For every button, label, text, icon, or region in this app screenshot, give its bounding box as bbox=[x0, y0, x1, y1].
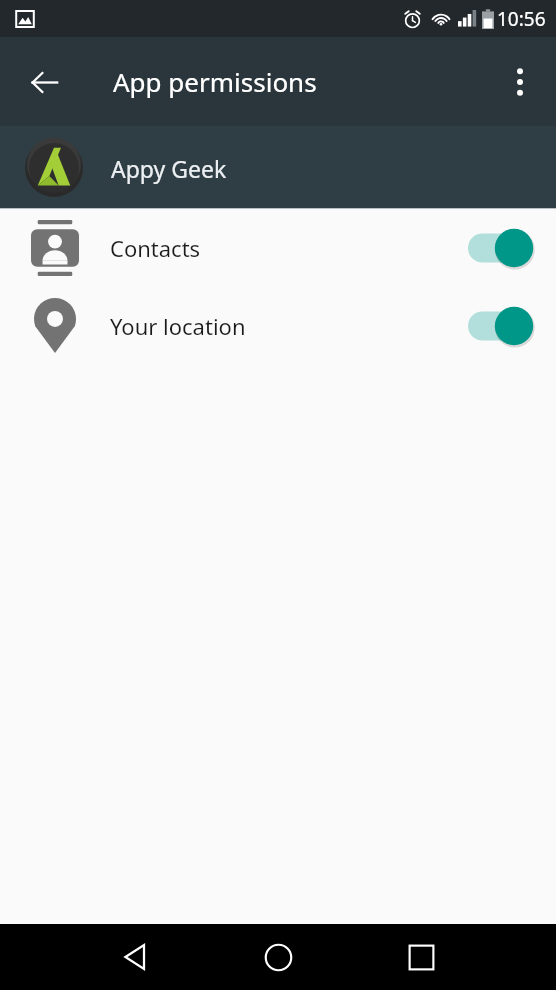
button[interactable]: Your location bbox=[0, 287, 556, 365]
staticText: 10:56 bbox=[497, 6, 546, 32]
staticText: Your location bbox=[110, 311, 246, 341]
button[interactable]: Back bbox=[14, 52, 74, 112]
button[interactable]: Back bbox=[104, 926, 166, 988]
button[interactable]: Recent apps bbox=[390, 926, 452, 988]
staticText: Appy Geek bbox=[111, 153, 227, 184]
button[interactable]: Contacts bbox=[0, 209, 556, 287]
button[interactable]: Contacts permission toggle bbox=[464, 223, 538, 273]
button[interactable]: More options bbox=[492, 54, 548, 110]
button[interactable]: Home bbox=[247, 926, 309, 988]
staticText: Contacts bbox=[110, 233, 201, 263]
button[interactable]: Appy Geek bbox=[0, 126, 556, 209]
staticText: App permissions bbox=[113, 64, 317, 99]
button[interactable]: Your location permission toggle bbox=[464, 301, 538, 351]
